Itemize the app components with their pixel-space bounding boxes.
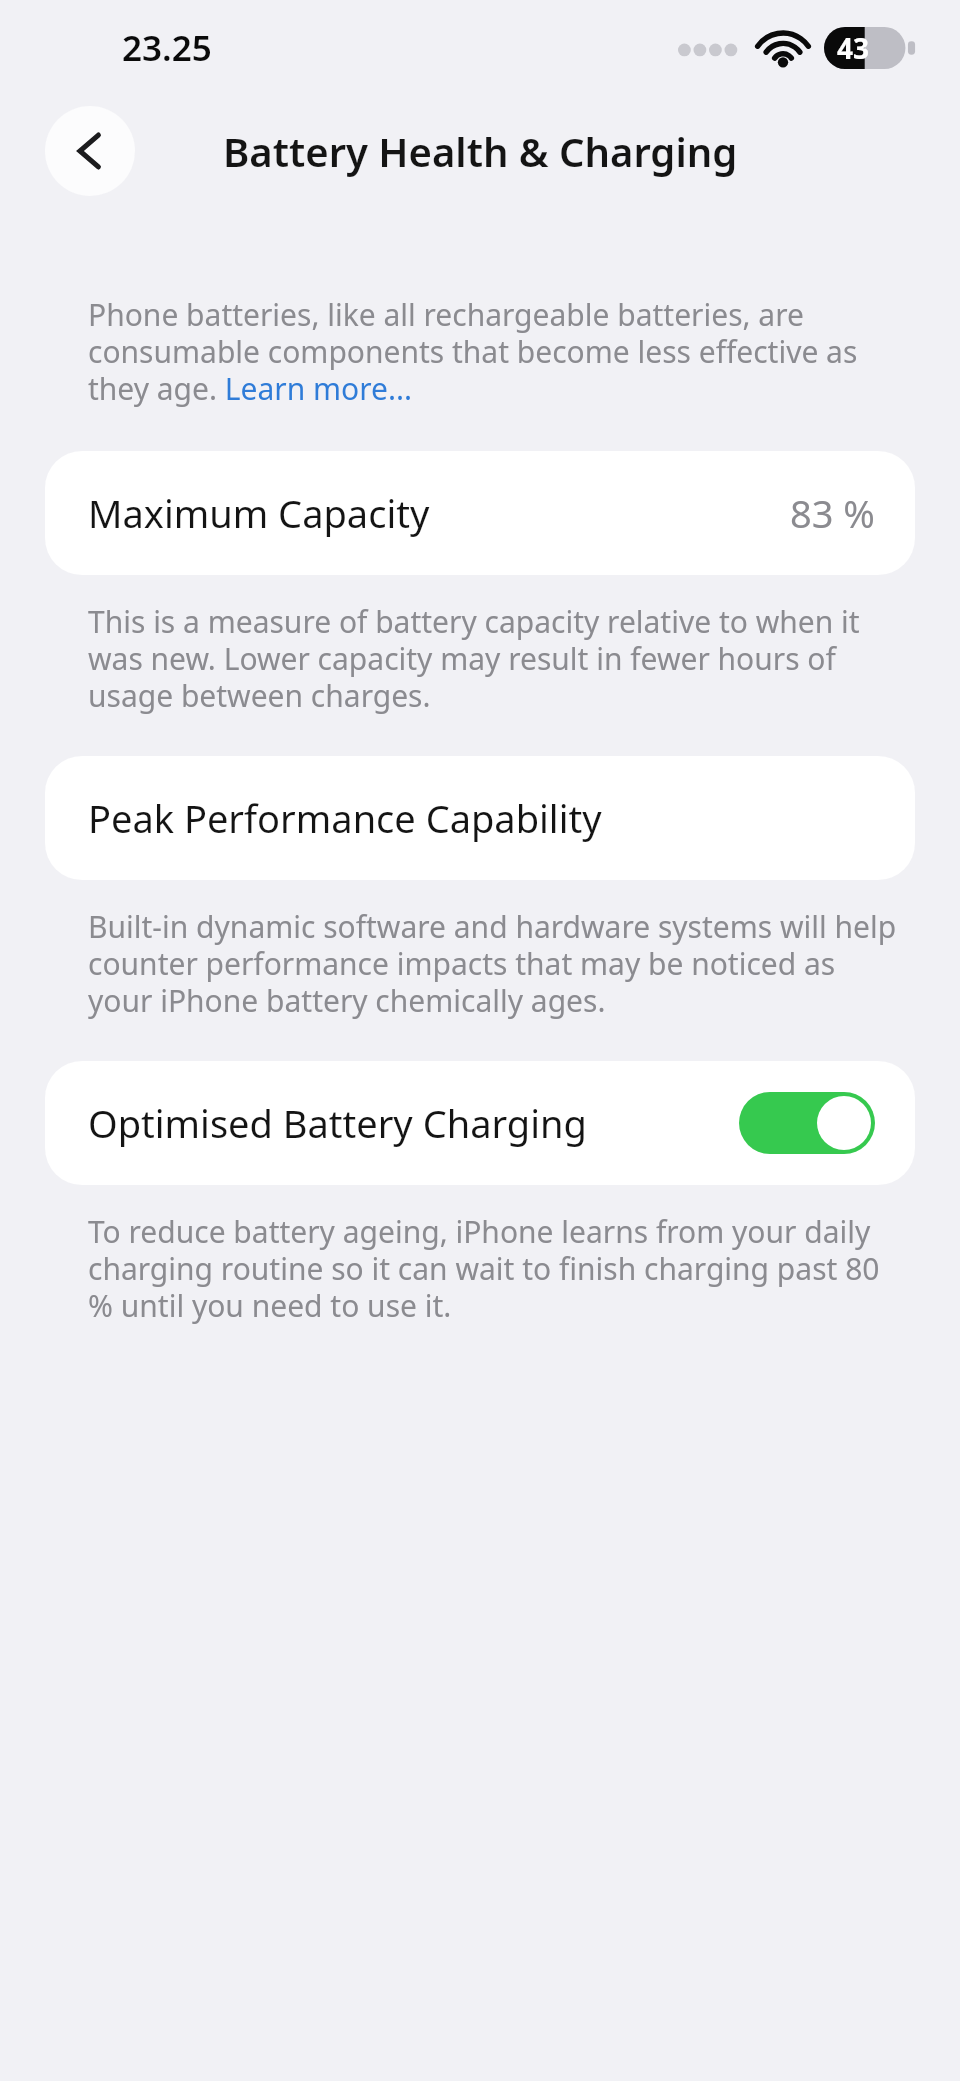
staticText: To reduce battery ageing, iPhone learns …: [88, 1211, 902, 1326]
staticText: Built-in dynamic software and hardware s…: [88, 906, 902, 1021]
button[interactable]: Optimised Battery Charging: [45, 1061, 915, 1185]
staticText: Battery Health & Charging: [223, 124, 738, 178]
staticText: Optimised Battery Charging: [88, 1097, 739, 1149]
button[interactable]: Back: [45, 106, 135, 196]
staticText: Maximum Capacity: [88, 487, 790, 539]
staticText: 43: [837, 29, 870, 67]
button[interactable]: Maximum Capacity: [45, 451, 915, 575]
staticText: 23.25: [122, 24, 212, 72]
button[interactable]: Peak Performance Capability: [45, 756, 915, 880]
staticText: 83 %: [790, 487, 875, 539]
staticText: Peak Performance Capability: [88, 792, 875, 844]
staticText: This is a measure of battery capacity re…: [88, 601, 902, 716]
button[interactable]: Phone batteries, like all rechargeable b…: [88, 294, 902, 409]
button[interactable]: Optimised Battery Charging: [739, 1092, 875, 1154]
